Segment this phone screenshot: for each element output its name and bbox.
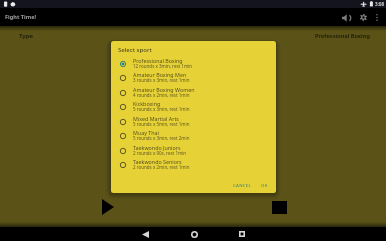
button[interactable]: Play <box>95 194 121 220</box>
staticText: Mixed Martial Arts <box>133 115 179 122</box>
button[interactable]: More options <box>370 11 383 24</box>
button[interactable]: Recents <box>222 227 262 241</box>
staticText: Select sport <box>118 46 152 54</box>
button[interactable]: Home <box>174 227 214 241</box>
staticText: 5 rounds x 3min, rest 2min <box>133 135 190 141</box>
button[interactable]: Settings <box>356 10 371 25</box>
staticText: 2 rounds x 2min, rest 1min <box>133 164 190 170</box>
staticText: Amateur Boxing Women <box>133 86 195 93</box>
button[interactable]: Amateur Boxing Men <box>111 70 276 85</box>
staticText: 4 rounds x 2min, rest 1min <box>133 92 190 98</box>
button[interactable]: Back <box>125 227 165 241</box>
button[interactable]: Professional Boxing <box>111 56 276 71</box>
staticText: OK <box>261 182 268 188</box>
staticText: Professional Boxing <box>133 57 183 64</box>
button[interactable]: Volume <box>339 10 354 25</box>
staticText: 3:08 <box>375 1 385 7</box>
button[interactable]: CANCEL <box>230 180 255 190</box>
staticText: 5 rounds x 3min, rest 1min <box>133 106 190 112</box>
staticText: Type <box>19 32 34 40</box>
staticText: Taekwondo Juniors <box>133 144 181 151</box>
staticText: Amateur Boxing Men <box>133 71 187 78</box>
button[interactable]: Taekwondo Juniors <box>111 143 276 158</box>
button[interactable]: Mixed Martial Arts <box>111 114 276 129</box>
staticText: 3 rounds x 3min, rest 1min <box>133 77 190 83</box>
staticText: CANCEL <box>233 182 252 188</box>
staticText: 12 rounds x 3min, rest 1min <box>133 63 193 69</box>
button[interactable]: OK <box>258 180 271 190</box>
staticText: Kickboxing <box>133 100 161 107</box>
button[interactable]: Kickboxing <box>111 99 276 114</box>
button[interactable]: Taekwondo Seniors <box>111 157 276 172</box>
button[interactable]: Amateur Boxing Women <box>111 85 276 100</box>
staticText: Taekwondo Seniors <box>133 158 182 165</box>
staticText: Muay Thai <box>133 129 159 136</box>
staticText: 2 rounds x 90s, rest 1min <box>133 150 187 156</box>
staticText: Professional Boxing <box>315 32 370 40</box>
staticText: Fight Time! <box>5 13 37 21</box>
button[interactable]: Stop <box>267 195 292 220</box>
staticText: 5 rounds x 5min, rest 1min <box>133 121 190 127</box>
button[interactable]: Muay Thai <box>111 128 276 143</box>
